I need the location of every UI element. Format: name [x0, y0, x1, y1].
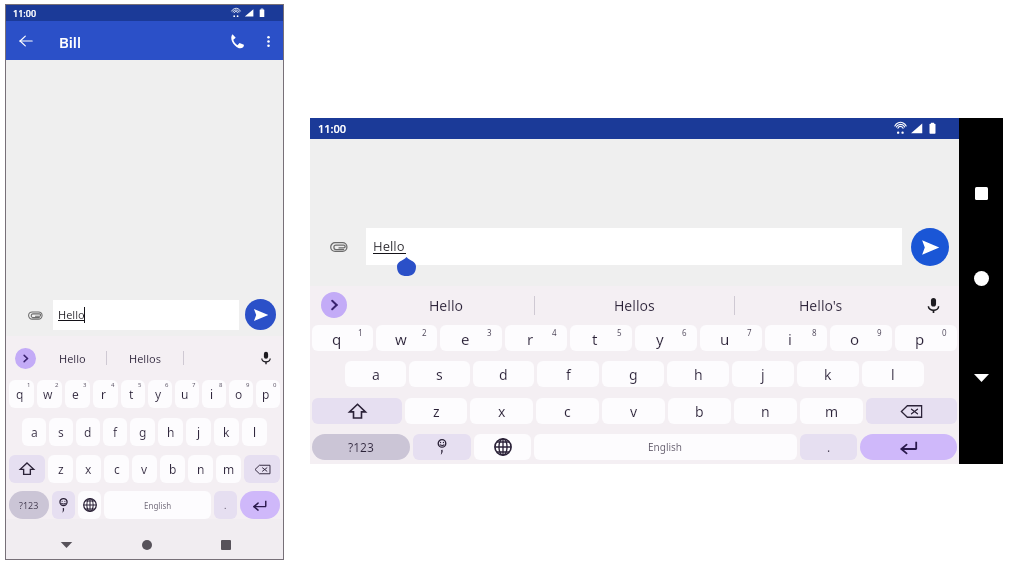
- staticText: English: [648, 440, 683, 454]
- button[interactable]: c: [536, 398, 599, 424]
- staticText: i: [210, 386, 214, 402]
- button[interactable]: Navigate up: [13, 28, 39, 54]
- button[interactable]: s: [409, 361, 470, 387]
- button[interactable]: Recent apps: [213, 532, 238, 557]
- button[interactable]: w: [376, 325, 437, 351]
- button[interactable]: Back: [54, 532, 79, 557]
- button[interactable]: g: [602, 361, 664, 387]
- button[interactable]: Enter: [860, 434, 957, 460]
- button[interactable]: Home: [134, 532, 159, 557]
- button[interactable]: m: [216, 455, 241, 483]
- button[interactable]: Emoji: [52, 491, 75, 519]
- button[interactable]: Change keyboard language: [78, 491, 101, 519]
- button[interactable]: z: [48, 455, 73, 483]
- button[interactable]: ?123: [312, 434, 410, 460]
- button[interactable]: y: [148, 380, 172, 408]
- staticText: n: [761, 402, 770, 421]
- button[interactable]: f: [537, 361, 599, 387]
- staticText: 1: [27, 381, 31, 389]
- button[interactable]: Hello: [53, 300, 239, 330]
- button[interactable]: Send: [911, 228, 949, 266]
- button[interactable]: j: [186, 418, 211, 446]
- button[interactable]: n: [188, 455, 213, 483]
- button[interactable]: Call: [224, 28, 250, 54]
- button[interactable]: u: [175, 380, 199, 408]
- button[interactable]: .: [800, 434, 857, 460]
- button[interactable]: Emoji: [413, 434, 471, 460]
- button[interactable]: q: [312, 325, 373, 351]
- button[interactable]: o: [830, 325, 892, 351]
- button[interactable]: Send: [245, 299, 276, 330]
- button[interactable]: Shift: [9, 455, 45, 483]
- button[interactable]: Hello: [358, 286, 534, 324]
- button[interactable]: k: [797, 361, 859, 387]
- button[interactable]: Backspace: [866, 398, 957, 424]
- button[interactable]: More suggestions: [15, 348, 36, 369]
- button[interactable]: Backspace: [244, 455, 280, 483]
- button[interactable]: More options: [255, 28, 281, 54]
- button[interactable]: Hello: [38, 336, 107, 380]
- button[interactable]: i: [202, 380, 226, 408]
- button[interactable]: k: [214, 418, 239, 446]
- button[interactable]: v: [132, 455, 157, 483]
- button[interactable]: e: [65, 380, 90, 408]
- button[interactable]: d: [76, 418, 100, 446]
- button[interactable]: Shift: [312, 398, 402, 424]
- button[interactable]: p: [256, 380, 280, 408]
- button[interactable]: .: [214, 491, 237, 519]
- button[interactable]: Attach file: [24, 304, 46, 326]
- button[interactable]: r: [505, 325, 567, 351]
- button[interactable]: o: [229, 380, 253, 408]
- button[interactable]: q: [9, 380, 34, 408]
- button[interactable]: z: [405, 398, 467, 424]
- button[interactable]: l: [242, 418, 267, 446]
- button[interactable]: a: [345, 361, 406, 387]
- button[interactable]: u: [700, 325, 762, 351]
- button[interactable]: t: [121, 380, 145, 408]
- button[interactable]: English: [534, 434, 797, 460]
- button[interactable]: s: [49, 418, 73, 446]
- staticText: 6: [165, 381, 169, 389]
- button[interactable]: Hello: [366, 228, 902, 265]
- button[interactable]: f: [103, 418, 127, 446]
- button[interactable]: h: [158, 418, 183, 446]
- button[interactable]: y: [635, 325, 697, 351]
- button[interactable]: Enter: [240, 491, 280, 519]
- button[interactable]: c: [104, 455, 129, 483]
- button[interactable]: l: [862, 361, 924, 387]
- button[interactable]: Recent apps: [966, 178, 996, 208]
- button[interactable]: Voice input: [920, 292, 946, 318]
- button[interactable]: Attach file: [327, 235, 351, 259]
- button[interactable]: v: [602, 398, 665, 424]
- button[interactable]: Hellos: [110, 336, 179, 380]
- button[interactable]: t: [570, 325, 632, 351]
- button[interactable]: x: [470, 398, 533, 424]
- button[interactable]: Hello's: [733, 286, 909, 324]
- button[interactable]: p: [895, 325, 957, 351]
- button[interactable]: m: [800, 398, 863, 424]
- button[interactable]: Change keyboard language: [474, 434, 531, 460]
- button[interactable]: More suggestions: [321, 292, 347, 318]
- button[interactable]: Hellos: [546, 286, 722, 324]
- button[interactable]: g: [130, 418, 155, 446]
- button[interactable]: b: [668, 398, 731, 424]
- button[interactable]: ?123: [9, 491, 49, 519]
- staticText: 6: [682, 327, 687, 338]
- button[interactable]: e: [440, 325, 502, 351]
- button[interactable]: j: [732, 361, 794, 387]
- button[interactable]: b: [160, 455, 185, 483]
- staticText: t: [592, 329, 598, 349]
- button[interactable]: a: [22, 418, 46, 446]
- button[interactable]: Voice input: [255, 347, 277, 369]
- button[interactable]: Home: [966, 263, 996, 293]
- button[interactable]: x: [76, 455, 101, 483]
- button[interactable]: r: [93, 380, 118, 408]
- staticText: y: [656, 329, 664, 349]
- button[interactable]: English: [104, 491, 211, 519]
- button[interactable]: i: [765, 325, 827, 351]
- button[interactable]: Back: [966, 362, 996, 392]
- button[interactable]: d: [473, 361, 534, 387]
- button[interactable]: n: [734, 398, 797, 424]
- button[interactable]: w: [37, 380, 62, 408]
- button[interactable]: h: [667, 361, 729, 387]
